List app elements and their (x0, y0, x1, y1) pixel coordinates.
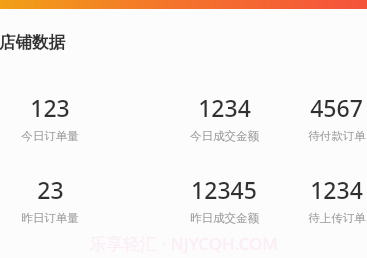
button[interactable]: 1234 (154, 92, 294, 143)
button[interactable]: 店铺数据 (0, 31, 67, 54)
staticText: 昨日成交金额 (190, 211, 259, 225)
button[interactable]: 1234 (293, 174, 367, 225)
staticText: 待上传订单 (308, 211, 366, 225)
staticText: 1234 (198, 92, 251, 118)
staticText: 今日订单量 (21, 129, 79, 143)
staticText: 乐享轻汇 · NJYCQH.COM (89, 232, 278, 255)
staticText: 待付款订单 (308, 129, 366, 143)
button[interactable]: 4567 (293, 92, 367, 143)
staticText: 4567 (310, 92, 363, 118)
button[interactable]: 123 (0, 92, 120, 143)
staticText: 12345 (191, 174, 257, 200)
staticText: 今日成交金额 (190, 129, 259, 143)
staticText: 23 (37, 174, 64, 200)
staticText: 1234 (310, 174, 363, 200)
button[interactable]: 23 (0, 174, 120, 225)
button[interactable]: 12345 (154, 174, 294, 225)
staticText: 昨日订单量 (21, 211, 79, 225)
staticText: 123 (30, 92, 70, 118)
other: Header accent bar (0, 0, 367, 9)
staticText: 店铺数据 (0, 32, 65, 53)
